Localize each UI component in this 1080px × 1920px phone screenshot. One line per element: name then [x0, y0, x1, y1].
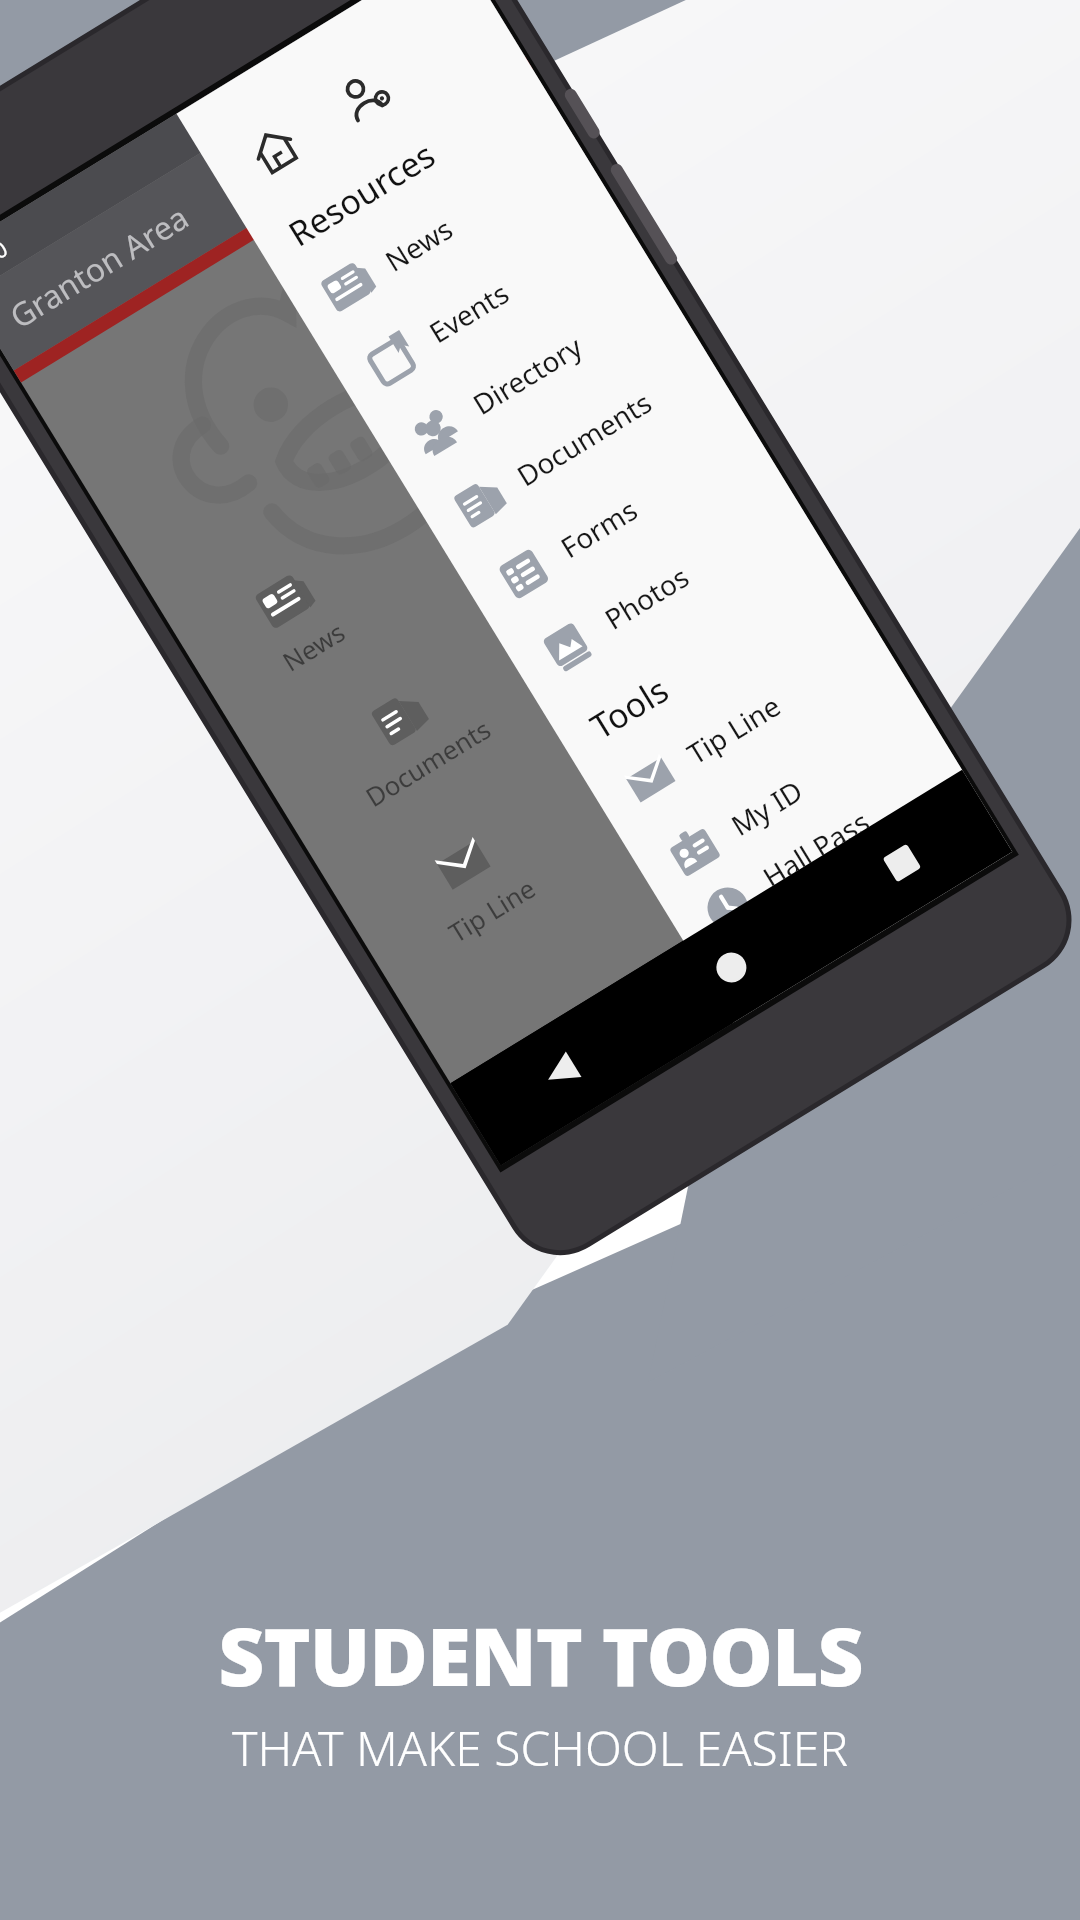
staticText: Directory [466, 327, 589, 423]
staticText: Events [422, 273, 516, 351]
button[interactable]: Home [621, 874, 842, 1061]
button[interactable]: Photos [498, 468, 821, 710]
button[interactable]: Documents [411, 325, 733, 567]
button[interactable]: Documents [327, 659, 497, 814]
button[interactable]: Back [450, 979, 671, 1165]
button[interactable]: Events [323, 181, 645, 424]
staticText: STUDENT TOOLS [218, 1600, 863, 1709]
button[interactable]: News [244, 562, 351, 678]
staticText: My ID [724, 771, 809, 844]
button[interactable]: Tip Line [410, 819, 541, 950]
staticText: Forms [553, 490, 644, 566]
staticText: Hall Pass [756, 802, 871, 887]
button[interactable]: Account [323, 52, 408, 138]
staticText: 9:00 [0, 233, 13, 281]
button[interactable]: Home [233, 108, 318, 193]
button[interactable]: Recent apps [792, 770, 1012, 956]
staticText: Tip Line [442, 870, 541, 950]
button[interactable]: Tip Line [581, 603, 904, 845]
staticText: News [276, 614, 351, 678]
button[interactable]: Hall Pass [669, 746, 962, 941]
staticText: Tip Line [680, 686, 788, 772]
staticText: THAT MAKE SCHOOL EASIER [232, 1715, 848, 1780]
button[interactable]: Directory [367, 253, 689, 496]
button[interactable]: My ID [625, 674, 947, 917]
staticText: Documents [359, 711, 497, 814]
staticText: Resources [280, 131, 444, 256]
staticText: Granton Area [1, 195, 197, 338]
staticText: Tools [582, 666, 676, 749]
staticText: Photos [597, 557, 696, 638]
button[interactable]: News [279, 110, 602, 352]
button[interactable]: Forms [454, 396, 777, 639]
staticText: Documents [510, 383, 658, 494]
staticText: News [378, 209, 459, 279]
